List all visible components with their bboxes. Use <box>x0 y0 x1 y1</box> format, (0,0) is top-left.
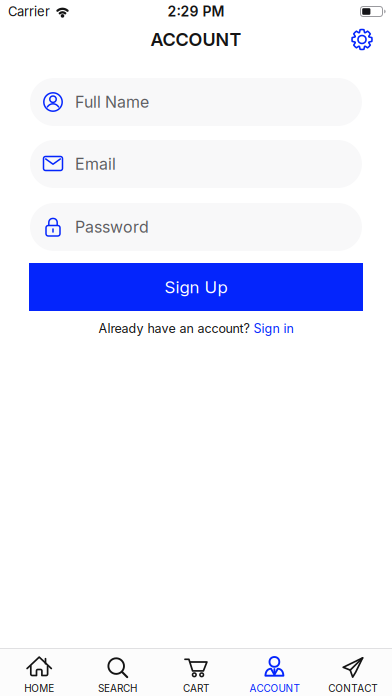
staticText: Email <box>75 155 116 173</box>
staticText: SEARCH <box>98 682 137 694</box>
staticText: Full Name <box>75 93 149 111</box>
button[interactable]: Password <box>0 203 392 251</box>
staticText: CART <box>183 682 209 694</box>
staticText: Sign in <box>253 321 293 336</box>
button[interactable]: SEARCH <box>78 650 157 694</box>
button[interactable]: Email <box>0 140 392 188</box>
button[interactable]: Sign Up <box>29 263 363 311</box>
staticText: ACCOUNT <box>150 29 241 50</box>
staticText: HOME <box>24 682 54 694</box>
staticText: Carrier <box>8 4 50 19</box>
staticText: Password <box>75 218 149 236</box>
staticText: 2:29 PM <box>167 3 224 20</box>
button[interactable]: Sign in <box>253 321 293 336</box>
button[interactable]: ACCOUNT <box>235 650 314 694</box>
button[interactable]: CART <box>157 650 235 694</box>
staticText: CONTACT <box>328 682 377 694</box>
button[interactable]: HOME <box>0 650 78 694</box>
button[interactable]: Full Name <box>0 78 392 126</box>
button[interactable]: CONTACT <box>314 650 392 694</box>
button[interactable] <box>351 28 373 50</box>
staticText: ACCOUNT <box>249 682 299 694</box>
staticText: Already have an account? <box>98 321 249 336</box>
staticText: Sign Up <box>164 277 227 297</box>
